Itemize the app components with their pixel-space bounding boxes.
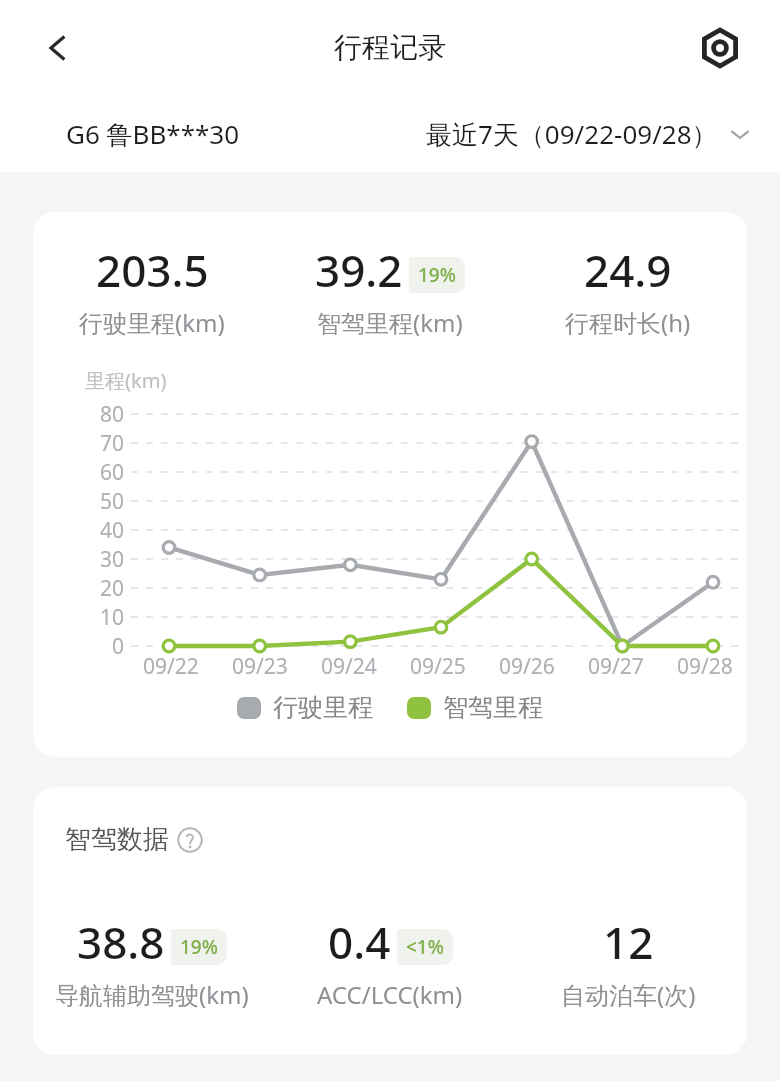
staticText: 行程时长(h) bbox=[565, 306, 691, 339]
staticText: 09/24 bbox=[321, 652, 377, 681]
staticText: 19% bbox=[180, 934, 218, 960]
staticText: 智驾里程 bbox=[443, 692, 543, 723]
staticText: 09/28 bbox=[677, 652, 733, 681]
button[interactable]: Settings bbox=[692, 20, 748, 76]
staticText: 10 bbox=[100, 603, 125, 632]
staticText: 39.2 bbox=[315, 240, 403, 300]
button[interactable]: 智驾数据 bbox=[65, 823, 203, 856]
staticText: 行驶里程 bbox=[273, 692, 373, 723]
button[interactable]: 智驾里程 bbox=[407, 692, 543, 723]
staticText: 50 bbox=[100, 487, 125, 516]
staticText: 行驶里程(km) bbox=[79, 306, 225, 339]
staticText: 19% bbox=[418, 262, 456, 288]
staticText: 40 bbox=[100, 516, 125, 545]
staticText: 最近7天（09/22-09/28） bbox=[426, 116, 718, 152]
staticText: 09/23 bbox=[232, 652, 288, 681]
staticText: 24.9 bbox=[584, 240, 672, 300]
staticText: ACC/LCC(km) bbox=[317, 978, 463, 1011]
staticText: 70 bbox=[100, 429, 125, 458]
staticText: 60 bbox=[100, 458, 125, 487]
staticText: 30 bbox=[100, 545, 125, 574]
staticText: 09/26 bbox=[499, 652, 555, 681]
staticText: 09/27 bbox=[588, 652, 644, 681]
staticText: 12 bbox=[603, 912, 654, 972]
staticText: 导航辅助驾驶(km) bbox=[55, 978, 249, 1011]
staticText: 09/22 bbox=[143, 652, 199, 681]
staticText: 80 bbox=[100, 400, 125, 429]
staticText: G6 鲁BB***30 bbox=[66, 116, 240, 152]
button[interactable]: 最近7天（09/22-09/28） bbox=[420, 108, 758, 160]
staticText: 智驾里程(km) bbox=[317, 306, 463, 339]
staticText: 203.5 bbox=[96, 240, 209, 300]
staticText: 38.8 bbox=[77, 912, 165, 972]
staticText: 自动泊车(次) bbox=[561, 978, 696, 1011]
staticText: <1% bbox=[406, 934, 444, 960]
staticText: 0 bbox=[112, 632, 125, 661]
staticText: 09/25 bbox=[410, 652, 466, 681]
button[interactable]: 行驶里程 bbox=[237, 692, 373, 723]
button[interactable]: Back bbox=[30, 20, 86, 76]
staticText: 行程记录 bbox=[334, 30, 446, 65]
staticText: 20 bbox=[100, 574, 125, 603]
staticText: 0.4 bbox=[328, 912, 391, 972]
staticText: 里程(km) bbox=[85, 367, 167, 394]
staticText: 智驾数据 bbox=[65, 823, 169, 856]
